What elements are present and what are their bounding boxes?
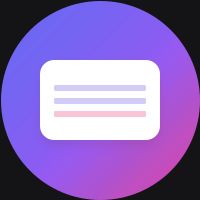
button[interactable]: Notes bbox=[0, 0, 200, 200]
